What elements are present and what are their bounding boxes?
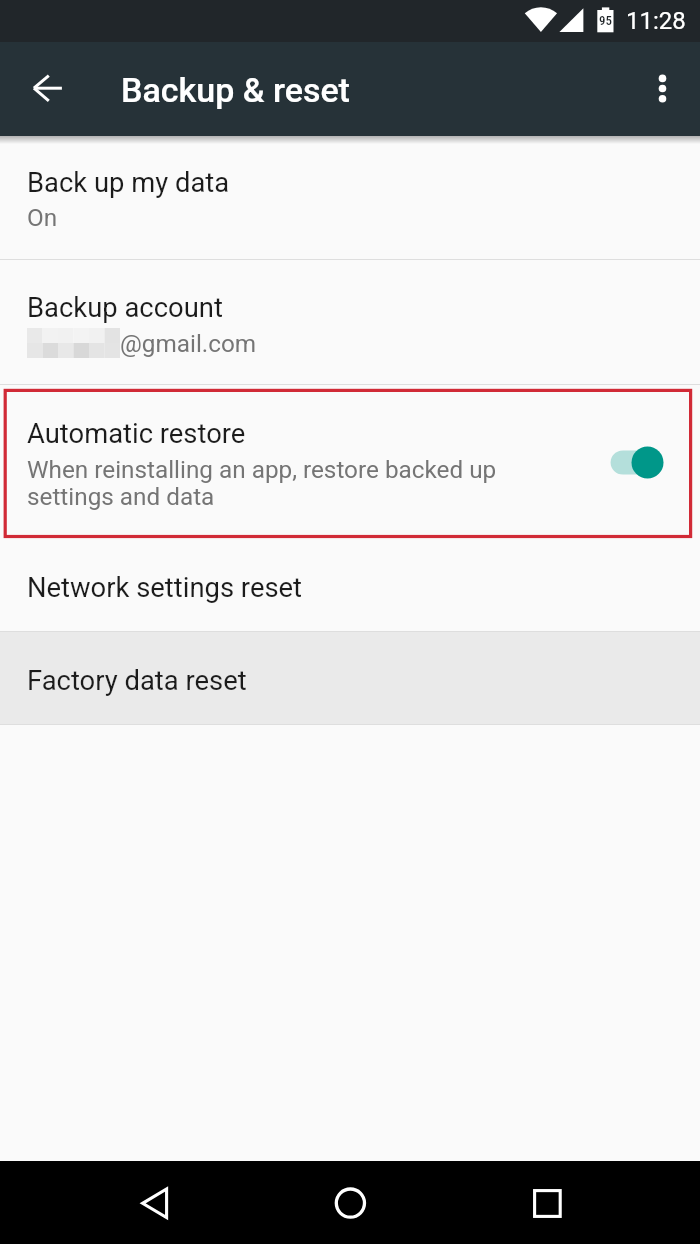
staticText: @gmail.com [120,329,257,357]
button[interactable]: Back up my data [0,136,700,259]
staticText: 11:28 [626,7,686,35]
button[interactable]: Back [114,1167,193,1238]
button[interactable]: Home [311,1167,390,1238]
staticText: Back up my data [27,167,230,199]
staticText: 95 [596,13,615,28]
button[interactable]: Backup account [0,260,700,384]
staticText: Network settings reset [27,572,303,604]
button[interactable]: Automatic restore [0,385,700,539]
button[interactable]: Factory data reset [0,632,700,724]
button[interactable]: Navigate up [20,61,76,117]
button[interactable]: More options [635,60,691,116]
staticText: Factory data reset [27,665,247,697]
staticText: Backup & reset [121,70,350,110]
button[interactable]: Network settings reset [0,539,700,631]
staticText: On [27,203,58,231]
button[interactable]: Recent apps [508,1167,587,1238]
staticText: Backup account [27,292,223,324]
staticText: When reinstalling an app, restore backed… [27,455,497,511]
button[interactable]: Automatic restore, on [596,385,700,539]
staticText: Automatic restore [27,418,246,450]
